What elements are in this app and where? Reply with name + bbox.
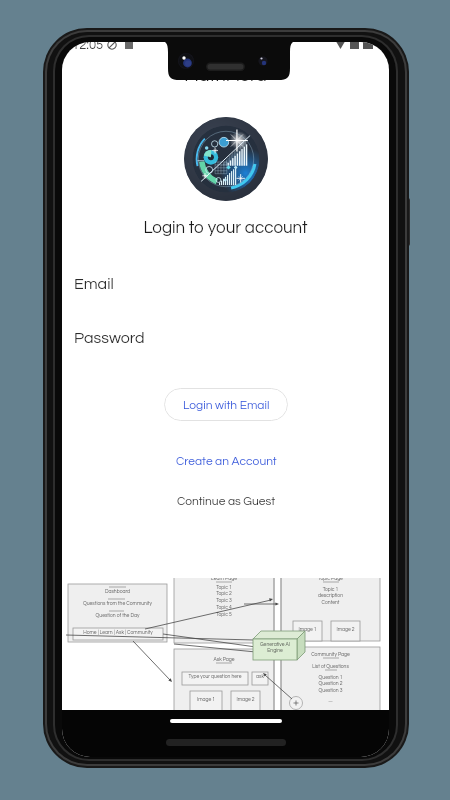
staticText: Password xyxy=(74,330,145,346)
staticText: Create an Account xyxy=(176,455,277,467)
staticText: Question of the Day xyxy=(68,613,167,618)
staticText: Image 1 xyxy=(190,697,222,702)
staticText: Questions from the Community xyxy=(68,601,167,606)
staticText: Topic 1 description Content xyxy=(281,587,380,605)
staticText: Topic 1 Topic 2 Topic 3 Topic 4 Topic 5 xyxy=(174,585,274,617)
staticText: Question 1 Question 2 Question 3 xyxy=(281,675,380,693)
button[interactable]: Continue as Guest xyxy=(150,490,302,512)
staticText: Image 2 xyxy=(231,697,260,702)
staticText: Login to your account xyxy=(62,219,389,237)
staticText: Topic Page xyxy=(281,578,380,581)
staticText: Home | Learn | Ask | Community xyxy=(73,630,163,635)
staticText: Type your question here xyxy=(182,674,248,679)
staticText: Email xyxy=(74,276,114,292)
staticText: .... xyxy=(281,698,380,703)
staticText: ask xyxy=(252,674,268,679)
staticText: Image 2 xyxy=(331,627,360,632)
button[interactable]: Login with Email xyxy=(164,388,288,421)
button[interactable]: Create an Account xyxy=(150,450,302,472)
staticText: MathFlora xyxy=(62,66,389,85)
staticText: Login with Email xyxy=(183,399,270,411)
staticText: 12:05 xyxy=(72,42,104,51)
staticText: Ask Page xyxy=(174,657,274,662)
staticText: Learn Page xyxy=(174,578,274,581)
staticText: List of Questions xyxy=(281,664,380,669)
staticText: Image 1 xyxy=(293,627,322,632)
staticText: Community Page xyxy=(281,652,380,657)
staticText: Continue as Guest xyxy=(177,495,276,507)
staticText: Dashboard xyxy=(68,589,167,594)
staticText: Generative AI Engine xyxy=(253,642,297,653)
